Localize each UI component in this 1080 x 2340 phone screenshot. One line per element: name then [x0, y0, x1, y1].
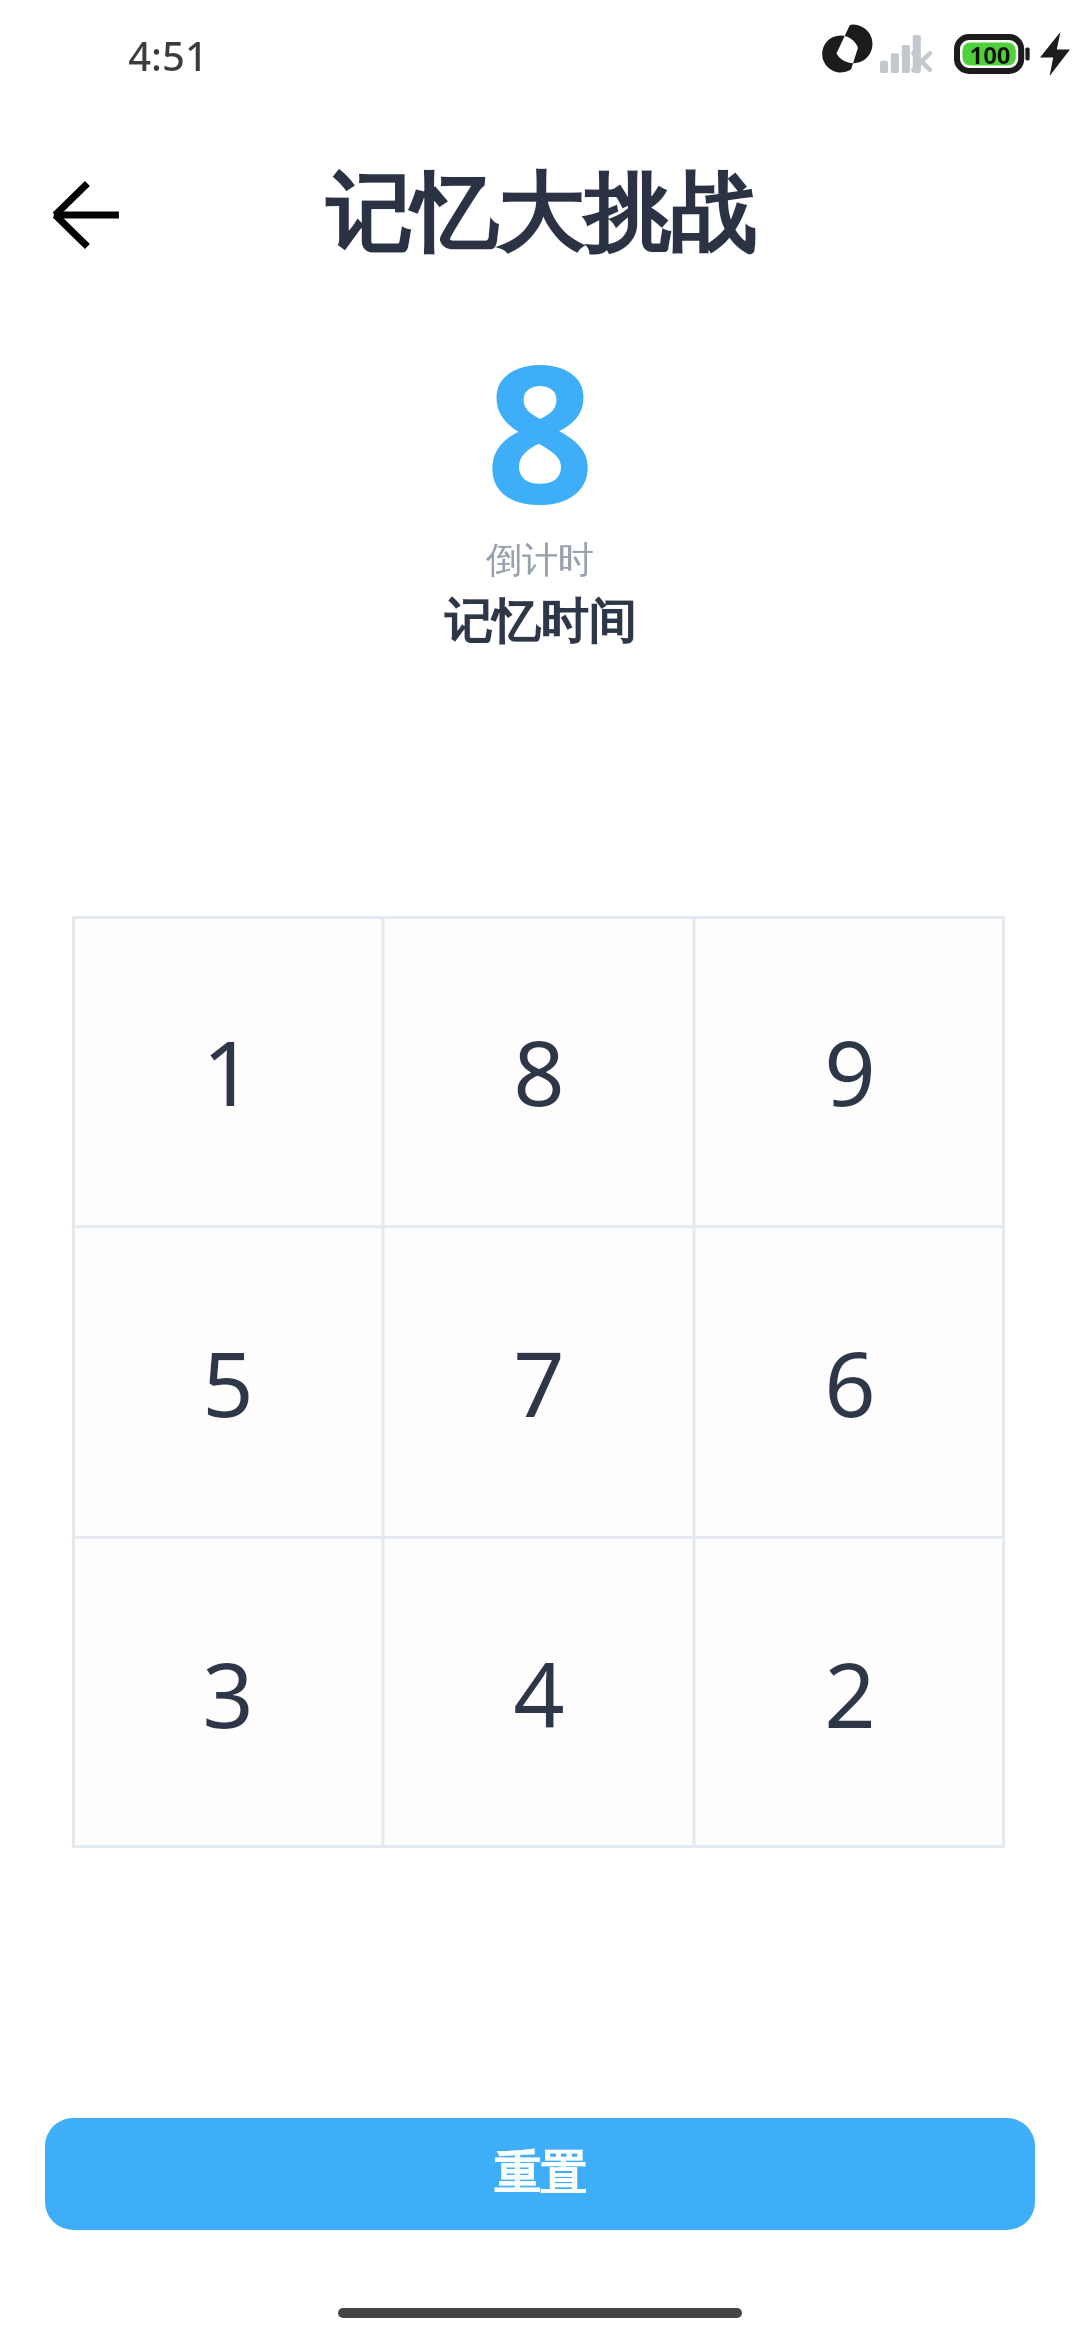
- staticText: 重置: [494, 2145, 586, 2203]
- staticText: 8: [0, 300, 1080, 559]
- button[interactable]: Back: [26, 155, 146, 275]
- staticText: 8: [513, 1010, 565, 1133]
- staticText: 记忆大挑战: [0, 160, 1080, 268]
- staticText: 4:51: [128, 28, 208, 82]
- staticText: 7: [513, 1321, 565, 1444]
- button[interactable]: 4: [383, 1538, 694, 1848]
- button[interactable]: 1: [72, 916, 383, 1227]
- staticText: 100: [969, 38, 1011, 71]
- button[interactable]: 9: [694, 916, 1005, 1227]
- staticText: 4: [513, 1632, 565, 1755]
- staticText: 5: [202, 1321, 254, 1444]
- staticText: 2: [824, 1632, 876, 1755]
- button[interactable]: 2: [694, 1538, 1005, 1848]
- button[interactable]: 重置: [45, 2118, 1035, 2230]
- button[interactable]: 7: [383, 1227, 694, 1538]
- button[interactable]: 3: [72, 1538, 383, 1848]
- staticText: 倒计时: [0, 537, 1080, 582]
- staticText: 6: [824, 1321, 876, 1444]
- button[interactable]: 8: [383, 916, 694, 1227]
- staticText: 3: [202, 1632, 254, 1755]
- button[interactable]: 5: [72, 1227, 383, 1538]
- staticText: 记忆时间: [0, 592, 1080, 652]
- staticText: 1: [202, 1010, 254, 1133]
- staticText: 9: [824, 1010, 876, 1133]
- button[interactable]: 6: [694, 1227, 1005, 1538]
